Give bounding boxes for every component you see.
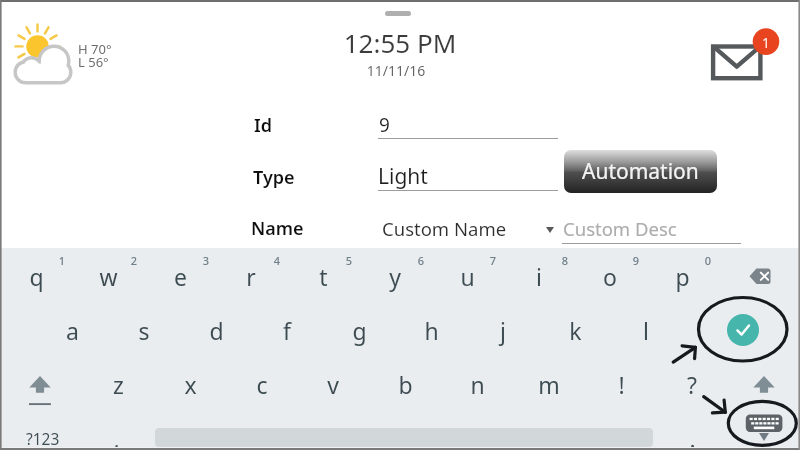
staticText: y [389,261,401,292]
staticText: 1 [762,33,770,52]
staticText: t [319,261,328,292]
staticText: Custom Desc [563,216,677,241]
staticText: v [327,369,339,400]
staticText: m [538,369,560,400]
staticText: . [689,423,696,450]
staticText: i [536,261,542,292]
staticText: 11/11/16 [0,61,796,80]
staticText: 8 [558,253,572,268]
button[interactable]: q [12,258,60,294]
button[interactable]: a [48,312,96,348]
button[interactable]: c [238,366,286,402]
button[interactable]: Shift [16,374,64,416]
staticText: f [283,315,291,346]
staticText: H 70° [78,40,112,58]
button[interactable]: Light [378,158,558,191]
button[interactable]: u [443,258,491,294]
staticText: 9 [629,253,643,268]
button[interactable]: , [94,423,138,450]
button[interactable]: m [525,366,573,402]
button[interactable]: v [309,366,357,402]
staticText: L 56° [78,53,109,71]
staticText: 1 [55,253,69,268]
button[interactable]: ? [668,366,716,402]
staticText: r [246,261,256,292]
staticText: c [256,369,268,400]
button[interactable]: s [120,312,168,348]
button[interactable]: y [371,258,419,294]
button[interactable]: o [586,258,634,294]
button[interactable]: x [166,366,214,402]
button[interactable]: l [622,312,670,348]
button[interactable]: r [227,258,275,294]
staticText: w [99,261,118,292]
staticText: 5 [342,253,356,268]
staticText: 9 [379,112,390,138]
staticText: 2 [127,253,141,268]
staticText: h [424,315,439,346]
staticText: u [460,261,475,292]
staticText: n [470,369,485,400]
button[interactable]: ?123 [10,423,70,450]
button[interactable]: Custom Name, dropdown [377,212,557,240]
staticText: j [500,315,506,346]
staticText: Id [254,113,272,138]
staticText: l [643,315,649,346]
staticText: e [174,261,187,292]
staticText: p [675,261,690,292]
button[interactable]: h [407,312,455,348]
button[interactable]: b [381,366,429,402]
button[interactable]: Enter [715,302,771,358]
button[interactable]: i [515,258,563,294]
button[interactable]: d [192,312,240,348]
staticText: a [66,315,79,346]
button[interactable]: j [479,312,527,348]
button[interactable]: Custom Desc [562,212,741,244]
staticText: z [113,369,124,400]
staticText: 12:55 PM [0,25,800,60]
button[interactable]: z [94,366,142,402]
staticText: , [113,423,120,450]
button[interactable]: n [453,366,501,402]
staticText: q [29,261,44,292]
button[interactable]: k [551,312,599,348]
button[interactable]: g [335,312,383,348]
staticText: s [138,315,150,346]
button[interactable]: p [658,258,706,294]
button[interactable]: ! [597,366,645,402]
staticText: 3 [199,253,213,268]
staticText: ?123 [26,428,60,449]
button[interactable]: Shift [740,374,788,400]
staticText: k [569,315,582,346]
button[interactable]: e [156,258,204,294]
staticText: ! [618,369,625,400]
staticText: d [209,315,224,346]
button[interactable]: f [263,312,311,348]
staticText: Light [378,162,428,191]
button[interactable]: . [672,423,712,450]
staticText: 7 [486,253,500,268]
button[interactable]: t [299,258,347,294]
staticText: 4 [270,253,284,268]
button[interactable]: Hide keyboard [742,410,792,446]
button[interactable]: Backspace [742,260,782,294]
button[interactable]: w [84,258,132,294]
staticText: b [398,369,413,400]
staticText: Type [253,165,295,190]
button[interactable]: Automation [564,150,717,193]
button[interactable]: 9 [378,108,558,139]
staticText: g [352,315,367,346]
staticText: 0 [701,253,715,268]
staticText: Automation [582,157,699,186]
staticText: ? [687,369,697,400]
staticText: o [603,261,617,292]
staticText: Name [251,216,304,241]
button[interactable]: Messages, 1 unread [705,26,781,86]
staticText: 6 [414,253,428,268]
staticText: Custom Name [382,216,507,241]
staticText: x [184,369,197,400]
